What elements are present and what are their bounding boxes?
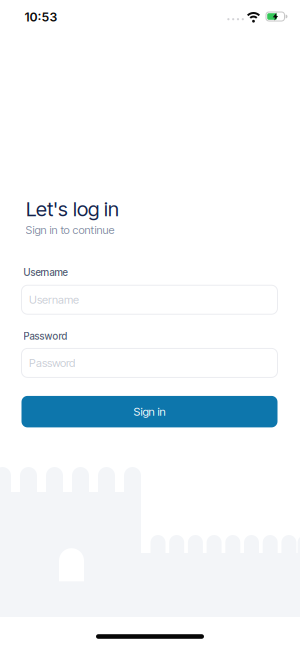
staticText: Username xyxy=(29,293,79,306)
button[interactable]: Password xyxy=(21,348,277,377)
button[interactable]: Sign in xyxy=(21,396,277,427)
staticText: Password xyxy=(29,356,75,369)
staticText: Sign in to continue xyxy=(25,223,114,236)
staticText: Username xyxy=(23,266,67,278)
button[interactable]: Username xyxy=(21,285,277,314)
staticText: Password xyxy=(23,330,67,342)
staticText: Let's log in xyxy=(26,197,119,221)
staticText: Sign in xyxy=(133,405,165,418)
staticText: 10:53 xyxy=(24,10,57,24)
